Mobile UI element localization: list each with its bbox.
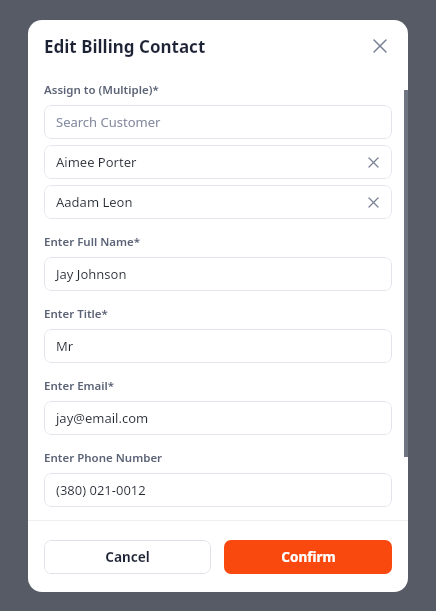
- staticText: Search Customer: [56, 113, 382, 131]
- button[interactable]: Remove Aimee Porter: [364, 153, 382, 171]
- button[interactable]: (380) 021-0012: [44, 473, 392, 507]
- button[interactable]: Close: [366, 32, 394, 60]
- button[interactable]: Mr: [44, 329, 392, 363]
- staticText: Assign to (Multiple)*: [44, 82, 159, 98]
- staticText: Enter Title*: [44, 306, 108, 322]
- staticText: Edit Billing Contact: [44, 35, 366, 58]
- staticText: Confirm: [281, 548, 336, 566]
- staticText: Aadam Leon: [56, 193, 364, 211]
- staticText: Enter Full Name*: [44, 234, 141, 250]
- staticText: Enter Email*: [44, 378, 115, 394]
- button[interactable]: Jay Johnson: [44, 257, 392, 291]
- staticText: Mr: [56, 337, 382, 355]
- button[interactable]: jay@email.com: [44, 401, 392, 435]
- staticText: Aimee Porter: [56, 153, 364, 171]
- staticText: (380) 021-0012: [56, 481, 382, 499]
- staticText: Jay Johnson: [56, 265, 382, 283]
- button[interactable]: Aimee Porter: [44, 145, 392, 179]
- staticText: Cancel: [105, 548, 150, 566]
- staticText: jay@email.com: [56, 409, 382, 427]
- button[interactable]: Aadam Leon: [44, 185, 392, 219]
- button[interactable]: Search Customer: [44, 105, 392, 139]
- button[interactable]: Cancel: [44, 540, 211, 574]
- button[interactable]: Remove Aadam Leon: [364, 193, 382, 211]
- staticText: Enter Phone Number: [44, 450, 163, 466]
- button[interactable]: Confirm: [224, 540, 392, 574]
